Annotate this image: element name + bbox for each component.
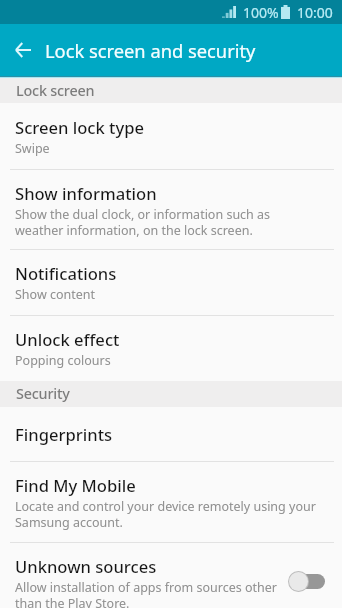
staticText: Allow installation of apps from sources …	[15, 579, 277, 608]
staticText: Show information	[15, 182, 157, 205]
staticText: 100%	[243, 3, 279, 22]
staticText: Fingerprints	[15, 423, 113, 446]
button[interactable]: Screen lock type	[0, 103, 342, 169]
staticText: Notifications	[15, 262, 117, 285]
button[interactable]: Unknown sources	[0, 542, 342, 608]
staticText: Screen lock type	[15, 116, 145, 139]
staticText: Show the dual clock, or information such…	[15, 206, 271, 239]
staticText: Security	[16, 384, 70, 404]
button[interactable]: Find My Mobile	[0, 461, 342, 542]
button[interactable]: Unknown sources toggle	[288, 571, 325, 592]
staticText: Find My Mobile	[15, 474, 136, 497]
staticText: Swipe	[15, 140, 50, 157]
staticText: Lock screen	[16, 81, 95, 101]
staticText: Popping colours	[15, 352, 111, 369]
button[interactable]: Navigate up	[0, 24, 47, 76]
staticText: 10:00	[297, 3, 333, 22]
staticText: Unlock effect	[15, 328, 120, 351]
staticText: Locate and control your device remotely …	[15, 498, 316, 531]
button[interactable]: Unlock effect	[0, 315, 342, 381]
button[interactable]: Fingerprints	[0, 407, 342, 461]
button[interactable]: Show information	[0, 169, 342, 249]
staticText: Unknown sources	[15, 555, 157, 578]
button[interactable]: Notifications	[0, 249, 342, 315]
staticText: Lock screen and security	[45, 38, 256, 63]
staticText: Show content	[15, 286, 96, 303]
